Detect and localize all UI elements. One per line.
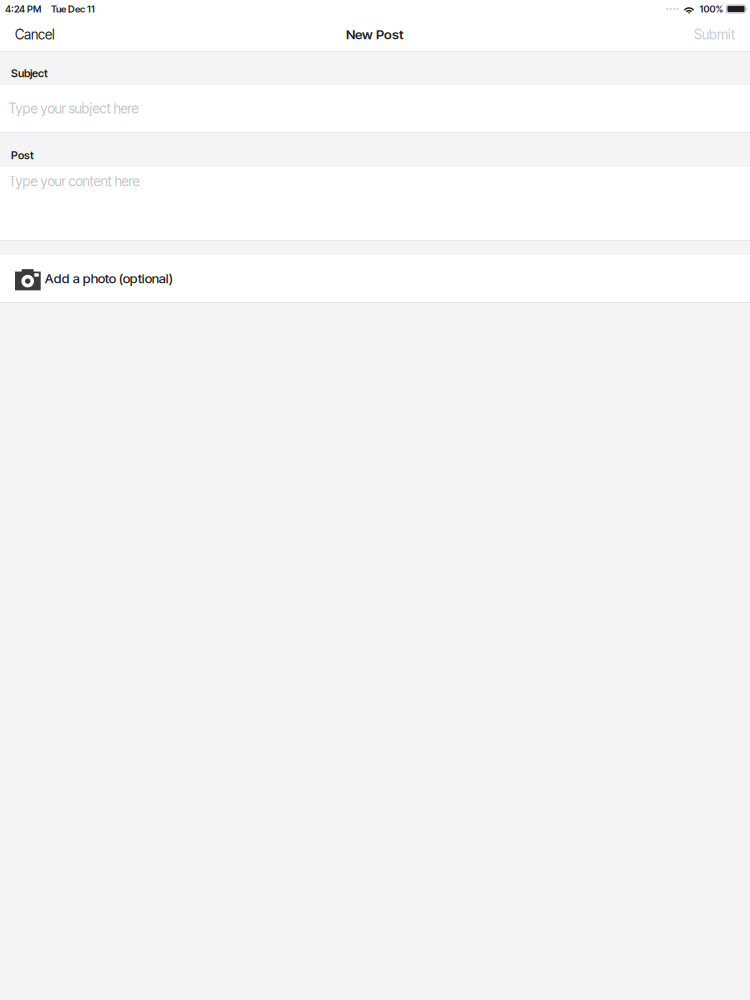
staticText: Type your subject here xyxy=(8,100,138,117)
staticText: New Post xyxy=(346,26,404,42)
staticText: Subject xyxy=(11,67,48,80)
staticText: 4:24 PM xyxy=(5,3,41,15)
staticText: Post xyxy=(11,149,34,162)
staticText: Type your content here xyxy=(8,173,139,189)
staticText: Cancel xyxy=(15,26,55,43)
staticText: Submit xyxy=(694,26,735,43)
button[interactable]: Type your subject here xyxy=(0,85,750,132)
button[interactable]: Submit xyxy=(679,17,750,52)
button[interactable]: Add a photo (optional) xyxy=(0,255,750,302)
staticText: Add a photo (optional) xyxy=(45,270,173,286)
button[interactable]: Cancel xyxy=(0,17,70,52)
button[interactable]: Type your content here xyxy=(0,167,750,240)
staticText: 100% xyxy=(699,3,723,15)
staticText: Tue Dec 11 xyxy=(51,3,95,15)
